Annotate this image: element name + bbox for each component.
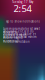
staticText: Tap to show notifications [5,20,39,23]
staticText: 2:54 [13,2,31,15]
staticText: Lorem ipsum dolor sit amet consectetu [3,27,40,34]
staticText: Tuesday, 17 May [12,0,33,4]
staticText: nostrud exercitation [3,40,30,43]
staticText: adipiscing elit sed do eiusmod tempor [3,30,34,37]
staticText: incididunt ut labore et dolore magna [3,32,36,40]
staticText: aliqua ut enim ad minim veniam quis [3,35,36,42]
